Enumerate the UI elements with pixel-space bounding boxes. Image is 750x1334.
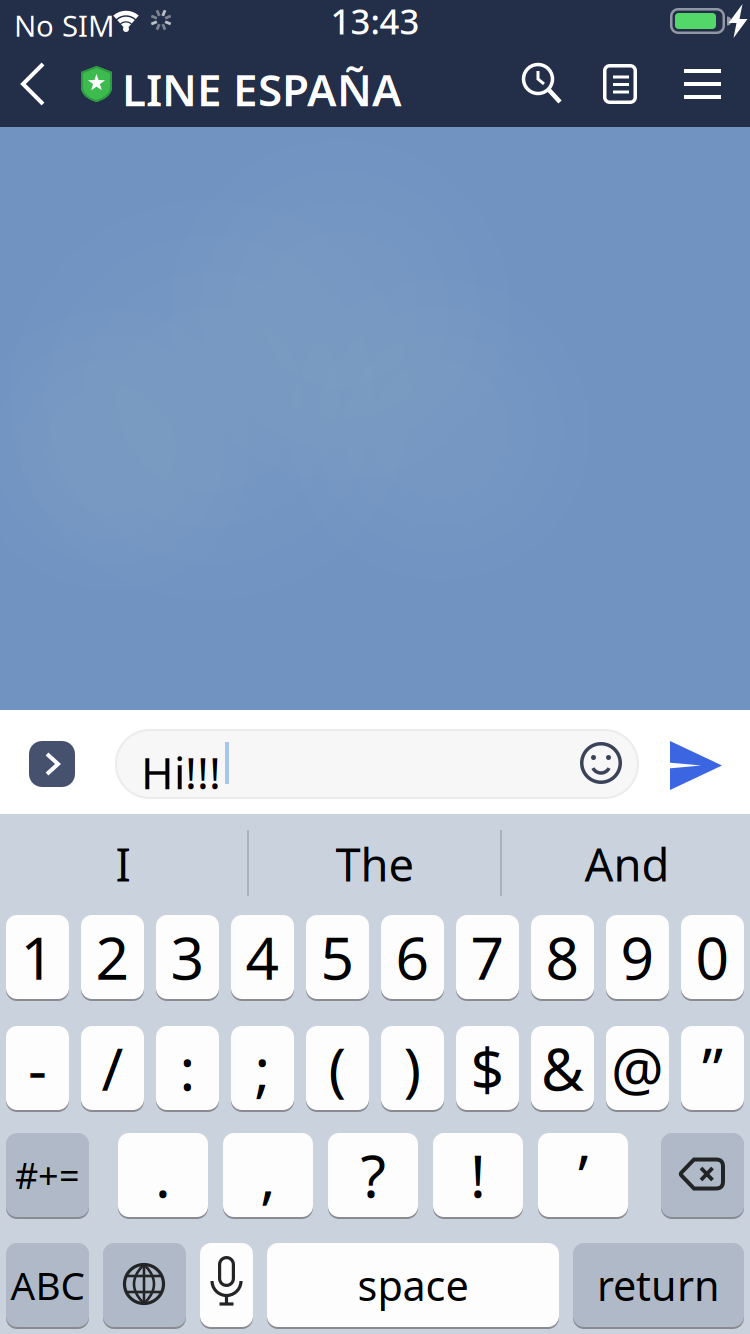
button[interactable]: More options: [29, 741, 75, 787]
button[interactable]: Delete: [661, 1132, 744, 1218]
staticText: LINE ESPAÑA: [122, 60, 402, 118]
button[interactable]: 9: [606, 914, 669, 1000]
staticText: :: [179, 1029, 195, 1107]
button[interactable]: ;: [231, 1025, 294, 1111]
staticText: I: [115, 834, 130, 894]
staticText: ;: [254, 1029, 270, 1107]
staticText: 8: [545, 918, 579, 996]
button[interactable]: !: [433, 1132, 523, 1218]
button[interactable]: &: [531, 1025, 594, 1111]
button[interactable]: :: [156, 1025, 219, 1111]
staticText: ”: [702, 1029, 723, 1107]
staticText: 13:43: [330, 0, 419, 44]
button[interactable]: 4: [231, 914, 294, 1000]
button[interactable]: 5: [306, 914, 369, 1000]
staticText: $: [470, 1029, 504, 1107]
staticText: 3: [170, 918, 204, 996]
staticText: /: [101, 1029, 123, 1107]
button[interactable]: The: [255, 824, 495, 904]
button[interactable]: 7: [456, 914, 519, 1000]
button[interactable]: 1: [6, 914, 69, 1000]
staticText: 1: [20, 918, 54, 996]
button[interactable]: 8: [531, 914, 594, 1000]
button[interactable]: 2: [81, 914, 144, 1000]
button[interactable]: Emoji: [578, 740, 624, 786]
staticText: ): [403, 1029, 421, 1107]
button[interactable]: (: [306, 1025, 369, 1111]
staticText: 4: [245, 918, 279, 996]
button[interactable]: 3: [156, 914, 219, 1000]
button[interactable]: ): [381, 1025, 444, 1111]
staticText: -: [28, 1029, 47, 1107]
staticText: 5: [320, 918, 354, 996]
button[interactable]: ’: [538, 1132, 628, 1218]
staticText: .: [155, 1136, 171, 1214]
button[interactable]: Menu: [667, 53, 729, 115]
staticText: !: [470, 1136, 486, 1214]
button[interactable]: @: [606, 1025, 669, 1111]
button[interactable]: Dictate: [200, 1242, 253, 1328]
button[interactable]: Next keyboard: [103, 1242, 186, 1328]
button[interactable]: 0: [681, 914, 744, 1000]
button[interactable]: $: [456, 1025, 519, 1111]
staticText: 0: [695, 918, 729, 996]
button[interactable]: ,: [223, 1132, 313, 1218]
staticText: The: [335, 834, 414, 894]
button[interactable]: 6: [381, 914, 444, 1000]
staticText: (: [328, 1029, 346, 1107]
button[interactable]: ABC: [6, 1242, 89, 1328]
button[interactable]: return: [573, 1242, 744, 1328]
staticText: space: [357, 1258, 468, 1312]
staticText: #+=: [15, 1151, 80, 1199]
button[interactable]: Back: [23, 54, 67, 114]
staticText: ?: [360, 1136, 385, 1214]
button[interactable]: ?: [328, 1132, 418, 1218]
button[interactable]: /: [81, 1025, 144, 1111]
button[interactable]: And: [507, 824, 747, 904]
staticText: return: [597, 1258, 720, 1312]
button[interactable]: Send: [660, 735, 730, 795]
staticText: &: [541, 1029, 584, 1107]
button[interactable]: .: [118, 1132, 208, 1218]
staticText: ,: [260, 1136, 276, 1214]
staticText: 6: [395, 918, 429, 996]
button[interactable]: space: [267, 1242, 559, 1328]
staticText: @: [611, 1029, 664, 1107]
staticText: 7: [470, 918, 504, 996]
staticText: 9: [620, 918, 654, 996]
button[interactable]: #+=: [6, 1132, 89, 1218]
button[interactable]: -: [6, 1025, 69, 1111]
button[interactable]: Search: [508, 53, 570, 115]
staticText: And: [584, 834, 669, 894]
staticText: 2: [95, 918, 129, 996]
button[interactable]: I: [3, 824, 243, 904]
staticText: ABC: [10, 1259, 84, 1311]
staticText: No SIM: [14, 6, 115, 45]
staticText: Hi!!!: [141, 743, 221, 801]
button[interactable]: ”: [681, 1025, 744, 1111]
staticText: ’: [578, 1136, 588, 1214]
button[interactable]: Notes: [586, 53, 648, 115]
